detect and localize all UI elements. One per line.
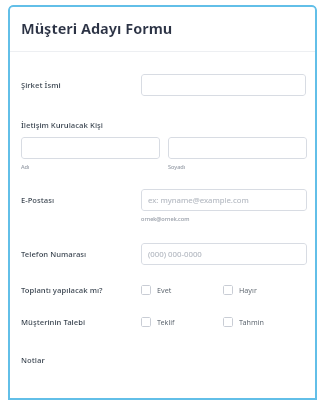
button[interactable]: Tahmin <box>223 317 264 327</box>
button[interactable]: Hayır <box>223 285 257 295</box>
staticText: Müşteri Adayı Formu <box>21 18 173 38</box>
staticText: Toplantı yapılacak mı? <box>21 285 103 295</box>
staticText: Teklif <box>157 317 175 327</box>
staticText: Müşterinin Talebi <box>21 317 86 327</box>
staticText: Soyadı <box>168 163 186 171</box>
button[interactable]: Telefon Numarası <box>141 243 307 265</box>
staticText: E-Postası <box>21 195 55 205</box>
staticText: Adı <box>21 163 30 171</box>
button[interactable]: Evet <box>141 285 223 295</box>
staticText: İletişim Kurulacak Kişi <box>21 120 103 130</box>
staticText: Hayır <box>239 285 257 295</box>
staticText: Şirket İsmi <box>21 80 61 90</box>
staticText: Evet <box>157 285 172 295</box>
button[interactable]: E-Postası <box>141 189 307 211</box>
button[interactable]: Teklif <box>141 317 223 327</box>
staticText: (000) 000-0000 <box>148 249 202 260</box>
staticText: Telefon Numarası <box>21 249 87 259</box>
button[interactable]: Şirket İsmi <box>141 74 306 96</box>
staticText: Notlar <box>21 355 45 365</box>
button[interactable]: Adı <box>21 137 160 159</box>
staticText: ornek@ornek.com <box>141 215 190 223</box>
button[interactable]: Soyadı <box>168 137 307 159</box>
staticText: Tahmin <box>239 317 264 327</box>
staticText: ex: myname@example.com <box>148 195 249 206</box>
